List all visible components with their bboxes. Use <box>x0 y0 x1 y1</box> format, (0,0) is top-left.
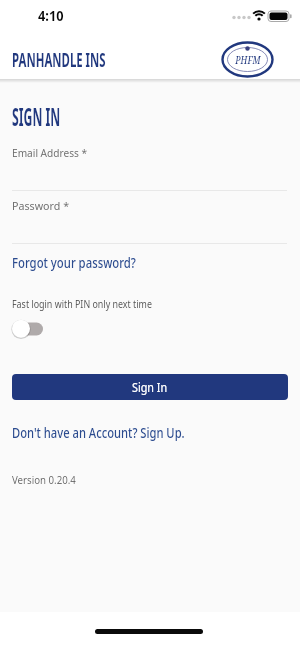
button[interactable]: PHFM <box>221 41 274 78</box>
button[interactable]: Email Address * <box>12 144 287 191</box>
button[interactable]: Don't have an Account? Sign Up. <box>0 0 208 18</box>
staticText: PANHANDLE INS <box>12 47 106 73</box>
button[interactable]: Password * <box>12 197 287 244</box>
staticText: Fast login with PIN only next time <box>12 297 153 311</box>
button[interactable]: Forgot your password? <box>0 0 148 18</box>
staticText: Email Address * <box>12 145 88 161</box>
staticText: Version 0.20.4 <box>12 472 76 487</box>
staticText: Sign In <box>132 379 168 395</box>
staticText: PHFM <box>235 53 261 67</box>
staticText: 4:10 <box>38 5 63 25</box>
staticText: SIGN IN <box>12 100 60 133</box>
staticText: Password * <box>12 198 70 214</box>
button[interactable]: Sign In <box>12 374 288 400</box>
button[interactable] <box>11 319 45 338</box>
